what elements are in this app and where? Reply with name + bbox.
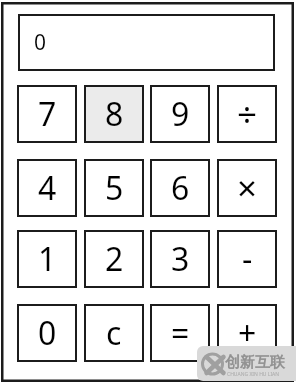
button[interactable]: 7 — [17, 85, 77, 143]
button[interactable]: 5 — [84, 159, 144, 217]
button[interactable]: = — [150, 304, 210, 362]
button[interactable]: × — [217, 159, 277, 217]
button[interactable]: 4 — [17, 159, 77, 217]
staticText: × — [237, 164, 258, 212]
button[interactable]: + — [217, 304, 277, 362]
staticText: c — [106, 311, 122, 355]
staticText: - — [242, 237, 253, 281]
button[interactable]: 1 — [17, 230, 77, 288]
staticText: = — [171, 311, 190, 355]
staticText: 创新互联 — [225, 353, 285, 372]
staticText: 3 — [171, 237, 190, 281]
staticText: 2 — [105, 237, 124, 281]
staticText: CHUANG XIN HU LIAN — [227, 371, 280, 378]
staticText: 5 — [105, 166, 124, 210]
staticText: 9 — [171, 92, 190, 136]
button[interactable]: 0 — [17, 304, 77, 362]
staticText: 0 — [34, 28, 47, 57]
staticText: 1 — [38, 237, 57, 281]
staticText: 4 — [38, 166, 57, 210]
button[interactable]: 8 — [84, 85, 144, 143]
staticText: 8 — [105, 92, 124, 136]
staticText: 0 — [38, 311, 57, 355]
button[interactable]: 0 — [18, 14, 275, 71]
button[interactable]: 3 — [150, 230, 210, 288]
staticText: 6 — [171, 166, 190, 210]
button[interactable]: ÷ — [217, 85, 277, 143]
staticText: + — [238, 311, 257, 355]
staticText: 7 — [38, 92, 57, 136]
button[interactable]: c — [84, 304, 144, 362]
staticText: ÷ — [237, 90, 258, 138]
button[interactable]: 6 — [150, 159, 210, 217]
button[interactable]: 9 — [150, 85, 210, 143]
button[interactable]: - — [217, 230, 277, 288]
button[interactable]: 2 — [84, 230, 144, 288]
